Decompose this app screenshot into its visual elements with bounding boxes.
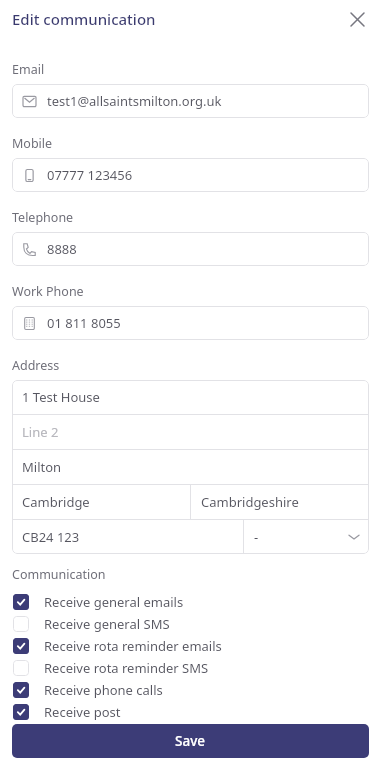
button[interactable]: Line 2 (12, 415, 369, 449)
staticText: 01 811 8055 (47, 314, 121, 332)
staticText: Receive rota reminder SMS (44, 659, 209, 677)
button[interactable]: 01 811 8055 (12, 306, 369, 340)
button[interactable]: Receive phone calls (0, 679, 381, 701)
staticText: Save (175, 732, 206, 750)
staticText: Line 2 (22, 423, 59, 441)
button[interactable]: Receive general emails (0, 591, 381, 613)
button[interactable]: Cambridge (12, 485, 190, 519)
staticText: 1 Test House (22, 388, 100, 406)
staticText: Edit communication (12, 9, 156, 29)
staticText: Address (12, 357, 60, 374)
staticText: Milton (22, 458, 62, 476)
button[interactable]: 1 Test House (12, 380, 369, 414)
button[interactable]: Receive rota reminder SMS (0, 657, 381, 679)
button[interactable]: CB24 123 (12, 520, 243, 554)
staticText: Communication (12, 566, 106, 583)
button[interactable]: Country (244, 520, 369, 554)
staticText: - (254, 528, 259, 546)
button[interactable]: Save (12, 724, 369, 758)
button[interactable]: Receive general SMS (0, 613, 381, 635)
button[interactable]: Cambridgeshire (191, 485, 369, 519)
button[interactable]: Milton (12, 450, 369, 484)
button[interactable]: test1@allsaintsmilton.org.uk (12, 84, 369, 118)
staticText: Cambridgeshire (201, 493, 299, 511)
staticText: test1@allsaintsmilton.org.uk (47, 92, 222, 110)
staticText: Receive post (44, 703, 121, 721)
staticText: 07777 123456 (47, 166, 133, 184)
button[interactable]: Close (343, 5, 371, 33)
button[interactable]: 07777 123456 (12, 158, 369, 192)
staticText: Receive rota reminder emails (44, 637, 222, 655)
staticText: Telephone (12, 209, 74, 226)
staticText: Receive phone calls (44, 681, 163, 699)
staticText: Mobile (12, 135, 53, 152)
button[interactable]: 8888 (12, 232, 369, 266)
staticText: CB24 123 (22, 528, 80, 546)
staticText: Work Phone (12, 283, 84, 300)
staticText: Receive general SMS (44, 615, 170, 633)
staticText: Receive general emails (44, 593, 184, 611)
staticText: Cambridge (22, 493, 90, 511)
staticText: Email (12, 61, 45, 78)
button[interactable]: Receive post (0, 701, 381, 723)
button[interactable]: Receive rota reminder emails (0, 635, 381, 657)
staticText: 8888 (47, 240, 77, 258)
